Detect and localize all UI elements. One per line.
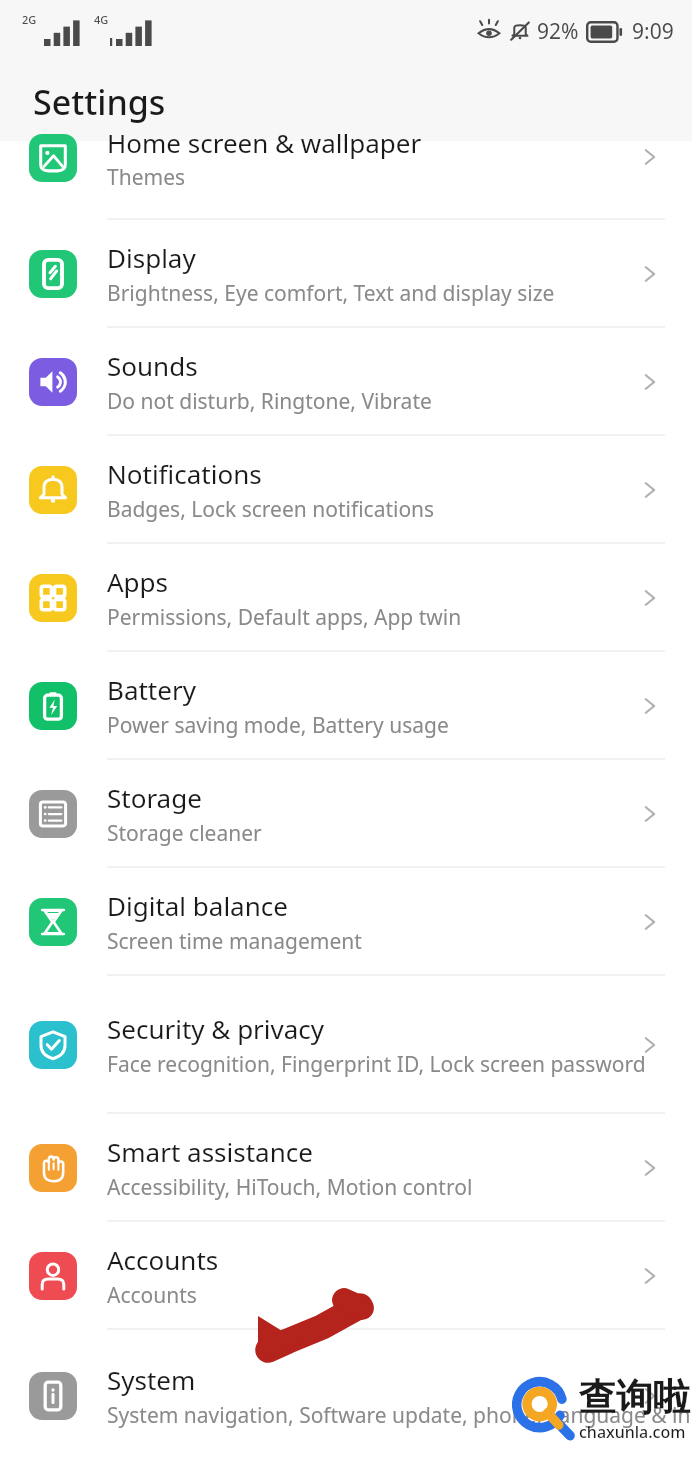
staticText: Apps [107, 564, 169, 599]
staticText: Settings [33, 79, 166, 125]
staticText: Brightness, Eye comfort, Text and displa… [107, 279, 555, 308]
staticText: Permissions, Default apps, App twin [107, 603, 462, 632]
staticText: Storage [107, 780, 202, 815]
other: Open Smart assistance [637, 1155, 663, 1181]
button[interactable]: Security & privacy [0, 976, 692, 1114]
other: Open Battery [637, 693, 663, 719]
staticText: Battery [107, 672, 196, 707]
button[interactable]: Home screen & wallpaper [0, 141, 692, 220]
staticText: Storage cleaner [107, 819, 262, 848]
staticText: System [107, 1362, 196, 1397]
staticText: Screen time management [107, 927, 362, 956]
other: Open System [637, 1383, 663, 1409]
button[interactable]: Digital balance [0, 868, 692, 976]
staticText: Accessibility, HiTouch, Motion control [107, 1173, 473, 1202]
other: Open Security & privacy [637, 1032, 663, 1058]
other: Open Apps [637, 585, 663, 611]
staticText: 查询啦 [579, 1374, 690, 1421]
button[interactable]: Storage [0, 760, 692, 868]
staticText: System navigation, Software update, phon… [107, 1401, 692, 1430]
staticText: Accounts [107, 1281, 197, 1310]
other: Open Sounds [637, 369, 663, 395]
staticText: 92% [537, 17, 579, 46]
other: Open Digital balance [637, 909, 663, 935]
staticText: Accounts [107, 1242, 219, 1277]
staticText: Sounds [107, 348, 198, 383]
staticText: Power saving mode, Battery usage [107, 711, 449, 740]
button[interactable]: System [0, 1330, 692, 1461]
button[interactable]: Apps [0, 544, 692, 652]
staticText: Themes [107, 163, 186, 192]
staticText: Home screen & wallpaper [107, 125, 422, 160]
staticText: Notifications [107, 456, 262, 491]
button[interactable]: Sounds [0, 328, 692, 436]
staticText: 9:09 [632, 17, 674, 46]
other: Open Notifications [637, 477, 663, 503]
staticText: Face recognition, Fingerprint ID, Lock s… [107, 1050, 646, 1079]
staticText: Display [107, 240, 196, 275]
button[interactable]: Notifications [0, 436, 692, 544]
staticText: 4G [94, 12, 109, 27]
staticText: Smart assistance [107, 1134, 313, 1169]
button[interactable]: Display [0, 220, 692, 328]
other: Open Home screen & wallpaper [637, 144, 663, 170]
other: Open Display [637, 261, 663, 287]
staticText: Badges, Lock screen notifications [107, 495, 435, 524]
button[interactable]: Battery [0, 652, 692, 760]
other: Open Accounts [637, 1263, 663, 1289]
button[interactable]: Smart assistance [0, 1114, 692, 1222]
staticText: Digital balance [107, 888, 288, 923]
staticText: 2G [22, 12, 37, 27]
other: Open Storage [637, 801, 663, 827]
staticText: Do not disturb, Ringtone, Vibrate [107, 387, 432, 416]
staticText: chaxunla.com [579, 1421, 686, 1443]
staticText: Security & privacy [107, 1011, 325, 1046]
button[interactable]: Accounts [0, 1222, 692, 1330]
